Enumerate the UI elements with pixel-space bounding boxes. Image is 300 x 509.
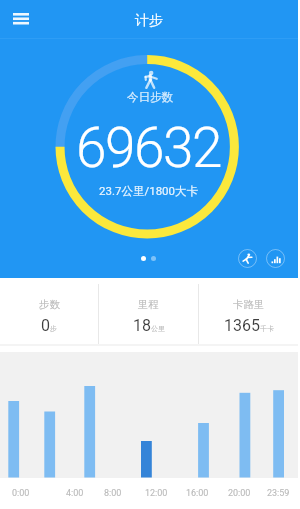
staticText: 步数: [39, 298, 60, 311]
staticText: 4:00: [66, 488, 84, 499]
staticText: 计步: [135, 12, 163, 30]
staticText: 0:00: [12, 488, 30, 499]
staticText: 公里: [151, 324, 165, 333]
button[interactable]: Activity tracking: [238, 249, 257, 268]
staticText: 69632: [76, 116, 222, 180]
staticText: 千卡: [260, 324, 274, 333]
staticText: 0: [41, 316, 50, 335]
staticText: 今日步数: [127, 90, 173, 104]
staticText: 23:59: [267, 488, 290, 499]
staticText: 里程: [138, 298, 159, 311]
button[interactable]: 步数: [0, 278, 98, 344]
staticText: 卡路里: [233, 298, 265, 311]
button[interactable]: Statistics: [266, 249, 285, 268]
staticText: 步: [50, 324, 57, 333]
button[interactable]: 卡路里: [199, 278, 298, 344]
button[interactable]: Open navigation menu: [0, 0, 41, 38]
staticText: 12:00: [145, 488, 168, 499]
staticText: 8:00: [104, 488, 122, 499]
staticText: 18: [133, 316, 151, 335]
staticText: 1365: [224, 316, 260, 335]
button[interactable]: 里程: [99, 278, 198, 344]
staticText: 23.7公里/1800大卡: [99, 184, 199, 198]
staticText: 16:00: [186, 488, 209, 499]
staticText: 20:00: [228, 488, 251, 499]
